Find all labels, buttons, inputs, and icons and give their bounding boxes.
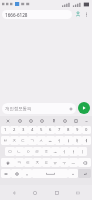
button[interactable]: Shift [1,158,15,167]
button[interactable]: 0 [82,126,91,134]
button[interactable]: ㅗ [51,147,60,156]
staticText: 8 [67,127,70,133]
staticText: ㅋ [17,160,22,165]
button[interactable]: ㅋ [15,158,24,167]
staticText: 0 [85,127,88,133]
button[interactable]: ㄴ [15,147,24,156]
button[interactable]: Comma [68,169,78,178]
button[interactable]: 4 [28,126,37,134]
button[interactable]: More options [83,11,90,18]
button[interactable]: Settings [15,116,24,125]
staticText: ㅣ [80,149,85,154]
staticText: ㅕ [57,138,62,143]
button[interactable]: ㅐ [73,136,82,145]
button[interactable]: Change language [11,169,22,178]
button[interactable]: ㄱ [28,136,37,145]
button[interactable]: Translate [71,116,80,125]
staticText: ㅊ [35,160,40,165]
button[interactable]: 1666-6128 [2,10,72,19]
button[interactable]: Backspace [78,158,91,167]
button[interactable]: ㅠ [51,158,60,167]
button[interactable]: Close [3,116,12,125]
staticText: 2 [13,127,16,133]
button[interactable]: 9 [73,126,82,134]
button[interactable]: 7 [55,126,64,134]
button[interactable]: GIF [26,116,35,125]
staticText: ㅠ [53,160,58,165]
button[interactable]: ㅇ [24,147,33,156]
button[interactable]: ㅁ [5,147,15,156]
staticText: ㄴ [17,149,22,154]
staticText: ㅎ [44,149,49,154]
button[interactable]: Add recipient [73,9,83,19]
staticText: ㅔ [84,138,89,143]
staticText: ㅐ [75,138,80,143]
button[interactable]: Clipboard [37,116,46,125]
button[interactable]: Sticker [60,116,69,125]
button[interactable]: 3 [19,126,28,134]
button[interactable]: ㅏ [69,147,78,156]
staticText: ㅜ [62,160,67,165]
staticText: ㅇ [26,149,31,154]
button[interactable]: Period [22,169,32,178]
button[interactable]: 1 [1,126,10,134]
button[interactable]: Expand toolbar [83,118,89,124]
button[interactable]: 6 [46,126,55,134]
button[interactable]: ㅊ [33,158,42,167]
staticText: ㅁ [8,149,13,154]
staticText: 4 [31,127,34,133]
button[interactable]: Send [78,102,90,114]
button[interactable]: Recents [50,186,64,200]
button[interactable]: ㅓ [60,147,69,156]
button[interactable]: Home [28,186,42,200]
staticText: 1 [4,127,7,133]
button[interactable]: ㄷ [19,136,28,145]
staticText: ㄷ [21,138,26,143]
button[interactable]: ㅈ [10,136,19,145]
staticText: ㅈ [12,138,17,143]
staticText: ㅅ [39,138,44,143]
button[interactable]: ㅣ [78,147,87,156]
staticText: ㅓ [62,149,67,154]
staticText: ㄹ [35,149,40,154]
staticText: ㅑ [66,138,71,143]
button[interactable]: ㅅ [37,136,46,145]
button[interactable]: 5 [37,126,46,134]
button[interactable]: ㄹ [33,147,42,156]
staticText: ㅌ [26,160,31,165]
button[interactable]: ㅍ [42,158,51,167]
staticText: ㅂ [3,138,8,143]
staticText: ㅍ [44,160,49,165]
button[interactable]: ㅕ [55,136,64,145]
button[interactable]: ㅂ [1,136,10,145]
staticText: ㅏ [71,149,76,154]
button[interactable]: ㅜ [60,158,69,167]
staticText: 9 [76,127,79,133]
button[interactable]: 2 [10,126,19,134]
button[interactable]: ㅔ [82,136,91,145]
staticText: 6 [49,127,52,133]
staticText: ㅗ [53,149,58,154]
staticText: ㄱ [30,138,35,143]
button[interactable]: ㅌ [24,158,33,167]
button[interactable]: ㅑ [64,136,73,145]
button[interactable]: Voice input [49,116,58,125]
button[interactable]: 8 [64,126,73,134]
staticText: 7 [58,127,61,133]
button[interactable]: Symbols [1,169,11,178]
button[interactable]: 개인정보동의 [2,103,76,114]
button[interactable]: ㅎ [42,147,51,156]
button[interactable]: Space [32,169,68,178]
button[interactable]: ㅛ [46,136,55,145]
staticText: ㅛ [48,138,53,143]
button[interactable]: Back [7,186,21,200]
staticText: 3 [22,127,25,133]
button[interactable]: ㅡ [69,158,78,167]
staticText: 1666-6128 [5,12,28,18]
staticText: 5 [40,127,43,133]
button[interactable]: Hide keyboard [71,186,85,200]
button[interactable]: Enter [78,169,91,178]
staticText: ㅡ [71,160,76,165]
staticText: 개인정보동의 [5,106,32,112]
